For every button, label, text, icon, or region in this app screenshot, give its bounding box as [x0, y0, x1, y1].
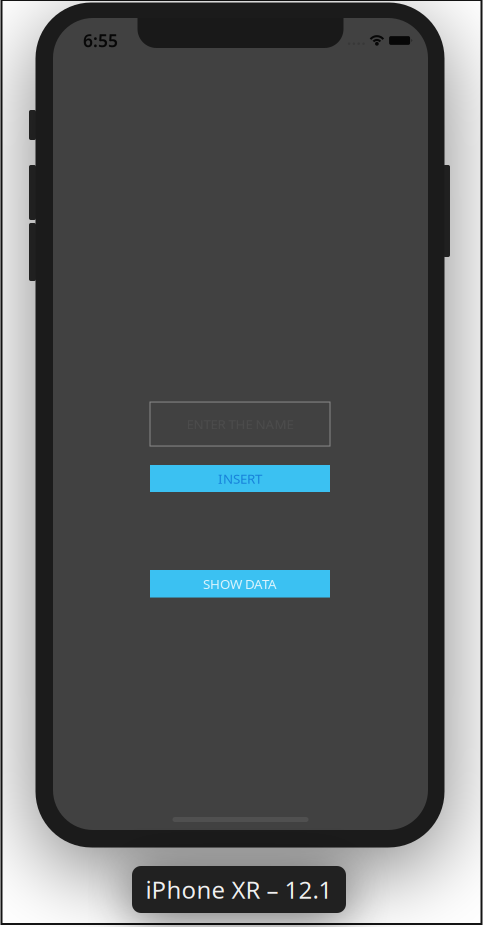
staticText: ENTER THE NAME: [186, 415, 293, 433]
staticText: INSERT: [218, 470, 262, 487]
button[interactable]: INSERT: [150, 465, 330, 492]
staticText: SHOW DATA: [203, 575, 277, 593]
staticText: 6:55: [83, 29, 118, 52]
staticText: iPhone XR – 12.1: [145, 874, 332, 905]
button[interactable]: SHOW DATA: [150, 570, 330, 597]
button[interactable]: iPhone XR – 12.1: [132, 866, 346, 913]
